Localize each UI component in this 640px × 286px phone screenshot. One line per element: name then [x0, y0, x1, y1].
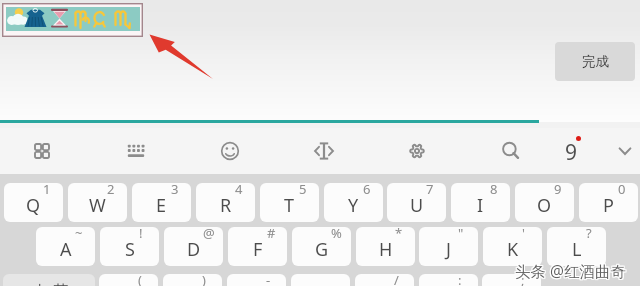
- button[interactable]: Q: [4, 183, 63, 222]
- staticText: 头条 @红酒曲奇: [514, 259, 625, 280]
- staticText: O: [537, 193, 552, 218]
- button[interactable]: X: [163, 274, 222, 286]
- button[interactable]: K: [483, 227, 542, 266]
- button[interactable]: M: [482, 274, 541, 286]
- button[interactable]: P: [579, 183, 638, 222]
- staticText: 中/英: [33, 280, 69, 286]
- staticText: 头条 @红酒曲奇: [514, 261, 625, 282]
- button[interactable]: Keyboard layout: [113, 128, 159, 174]
- button[interactable]: U: [387, 183, 446, 222]
- staticText: 头条 @红酒曲奇: [516, 259, 627, 280]
- button[interactable]: Emoji suggestions: [2, 3, 143, 37]
- staticText: A: [60, 237, 72, 262]
- staticText: 7: [426, 183, 434, 198]
- button[interactable]: Y: [324, 183, 383, 222]
- button[interactable]: Apps: [19, 128, 65, 174]
- button[interactable]: J: [419, 227, 478, 266]
- button[interactable]: Move cursor: [301, 128, 347, 174]
- staticText: D: [187, 237, 201, 262]
- staticText: 8: [490, 183, 498, 198]
- staticText: (: [138, 274, 142, 286]
- button[interactable]: D: [164, 227, 223, 266]
- staticText: 9: [565, 138, 578, 167]
- button[interactable]: Notifications: [547, 128, 593, 174]
- staticText: @: [203, 227, 215, 242]
- staticText: 2: [107, 183, 115, 198]
- button[interactable]: F: [228, 227, 287, 266]
- staticText: %: [331, 227, 342, 242]
- staticText: /: [394, 274, 399, 286]
- staticText: 头条 @红酒曲奇: [515, 260, 626, 281]
- staticText: H: [379, 237, 393, 262]
- staticText: Q: [26, 193, 41, 218]
- staticText: 1: [43, 183, 51, 198]
- staticText: 6: [363, 183, 371, 198]
- staticText: #: [267, 227, 276, 242]
- staticText: *: [395, 227, 403, 242]
- staticText: P: [603, 193, 614, 218]
- staticText: K: [507, 237, 519, 262]
- button[interactable]: I: [451, 183, 510, 222]
- staticText: T: [284, 193, 295, 218]
- staticText: Y: [348, 193, 359, 218]
- staticText: ?: [586, 227, 592, 242]
- button[interactable]: R: [196, 183, 255, 222]
- staticText: W: [89, 193, 106, 218]
- staticText: !: [139, 227, 143, 242]
- button[interactable]: W: [68, 183, 127, 222]
- button[interactable]: L: [547, 227, 606, 266]
- button[interactable]: N: [419, 274, 478, 286]
- button[interactable]: O: [515, 183, 574, 222]
- button[interactable]: G: [292, 227, 351, 266]
- button[interactable]: B: [355, 274, 414, 286]
- staticText: F: [253, 237, 263, 262]
- button[interactable]: S: [100, 227, 159, 266]
- staticText: R: [220, 193, 232, 218]
- staticText: 0: [618, 183, 626, 198]
- staticText: 头条 @红酒曲奇: [515, 261, 626, 282]
- staticText: 3: [171, 183, 179, 198]
- staticText: I: [477, 193, 484, 218]
- button[interactable]: Settings: [394, 128, 440, 174]
- staticText: 完成: [582, 53, 609, 70]
- staticText: ~: [75, 227, 83, 242]
- button[interactable]: V: [291, 274, 350, 286]
- staticText: -: [266, 274, 271, 286]
- staticText: ": [458, 227, 464, 242]
- staticText: 9: [554, 183, 562, 198]
- staticText: 头条 @红酒曲奇: [514, 260, 625, 281]
- button[interactable]: 完成: [555, 42, 635, 81]
- staticText: E: [156, 193, 167, 218]
- staticText: 4: [235, 183, 243, 198]
- staticText: S: [125, 237, 135, 262]
- staticText: 头条 @红酒曲奇: [515, 259, 626, 280]
- staticText: 5: [299, 183, 307, 198]
- button[interactable]: C: [227, 274, 286, 286]
- button[interactable]: Search: [488, 128, 534, 174]
- button[interactable]: Collapse keyboard: [602, 128, 640, 174]
- staticText: ): [202, 274, 206, 286]
- staticText: ;: [521, 274, 525, 286]
- button[interactable]: Z: [99, 274, 158, 286]
- button[interactable]: Emoji: [207, 128, 253, 174]
- button[interactable]: H: [356, 227, 415, 266]
- staticText: J: [446, 237, 451, 262]
- staticText: L: [572, 237, 582, 262]
- staticText: 头条 @红酒曲奇: [516, 260, 627, 281]
- staticText: ': [522, 227, 525, 242]
- staticText: U: [410, 193, 424, 218]
- button[interactable]: A: [36, 227, 95, 266]
- staticText: :: [458, 274, 462, 286]
- button[interactable]: T: [260, 183, 319, 222]
- staticText: G: [315, 237, 329, 262]
- button[interactable]: Switch language: [3, 274, 95, 286]
- button[interactable]: E: [132, 183, 191, 222]
